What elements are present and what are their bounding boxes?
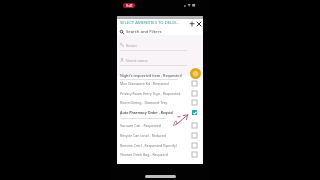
button[interactable]: Room (120, 42, 203, 48)
staticText: Mini Glassware Kit - Requestd (120, 81, 190, 86)
staticText: Shower Drink Bag - Requestd (120, 152, 190, 157)
staticText: Recycle Can (one) - Reduced (120, 133, 190, 138)
staticText: Vacuum Can - Requested (120, 123, 190, 128)
staticText: 1 (120, 114, 122, 118)
staticText: Room Dining - Diamond Tray (120, 100, 190, 105)
staticText: SELECT AMENITIES TO DELIV... (120, 20, 188, 26)
button[interactable]: Vacuum Can - Requested (117, 120, 203, 130)
staticText: Privacy Room Entry Sign - Requested (120, 91, 190, 96)
staticText: Guest name (126, 58, 148, 63)
staticText: Auto Pharmacy Order - Reqstd (120, 110, 190, 115)
staticText: Room (126, 43, 137, 48)
button[interactable]: Shower Drink Bag - Requestd (117, 149, 203, 159)
button[interactable]: Pin dialog (188, 20, 195, 27)
button[interactable]: Add amenity (190, 68, 201, 79)
staticText: Night's requested item - Requested (120, 73, 182, 78)
button[interactable]: Auto Pharmacy Order - Reqstd (117, 107, 203, 117)
button[interactable]: Close dialog (195, 20, 202, 27)
staticText: 9:41 (126, 3, 133, 8)
button[interactable]: Mini Glassware Kit - Requestd (117, 78, 203, 88)
staticText: Search and Filters (126, 29, 162, 35)
button[interactable]: Room Dining - Diamond Tray (117, 97, 203, 107)
button[interactable]: Guest name (120, 57, 203, 63)
button[interactable]: Recycle Can (one) - Reduced (117, 130, 203, 140)
button[interactable]: Privacy Room Entry Sign - Requested (117, 88, 203, 98)
staticText: Remote Cntrl - Requested (Specify) (120, 143, 190, 148)
button[interactable]: Search and Filters (120, 28, 203, 36)
button[interactable]: Remote Cntrl - Requested (Specify) (117, 140, 203, 150)
